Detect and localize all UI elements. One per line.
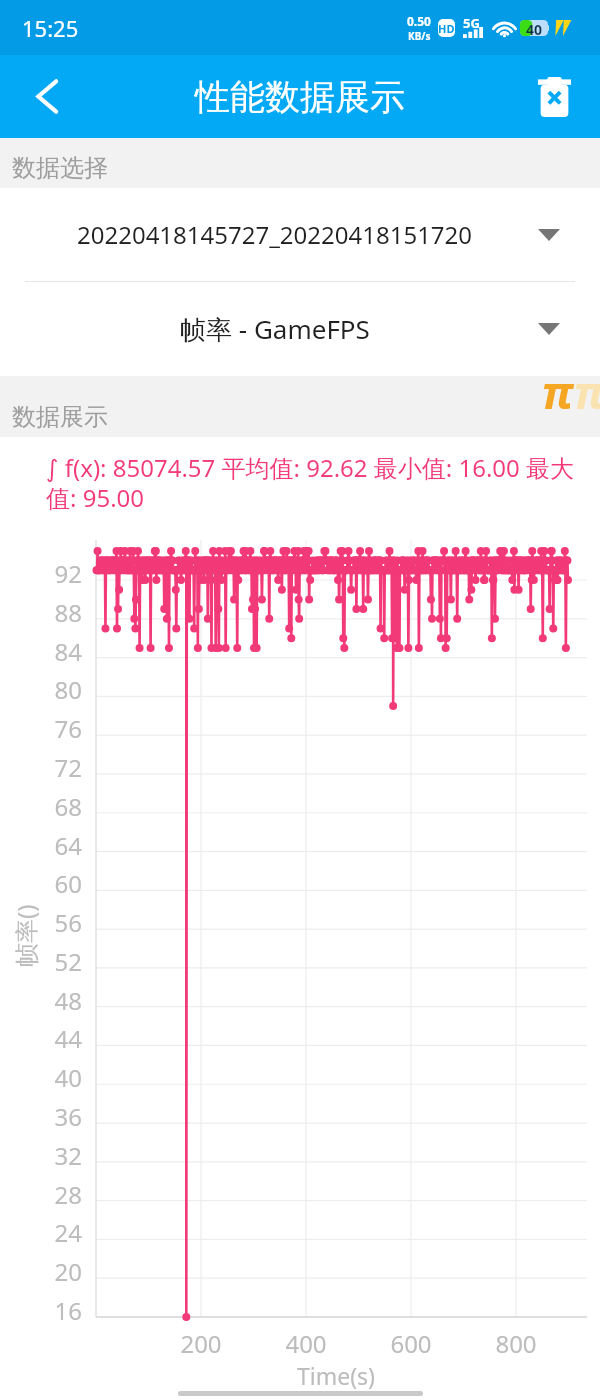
staticText: HD: [438, 21, 455, 36]
staticText: π: [574, 362, 600, 422]
staticText: 性能数据展示: [195, 75, 405, 119]
staticText: 92: [39, 557, 82, 590]
staticText: 84: [39, 635, 82, 668]
staticText: 40: [39, 1061, 82, 1094]
staticText: 72: [39, 751, 82, 784]
staticText: 200: [161, 1327, 241, 1360]
button[interactable]: Back: [0, 55, 74, 138]
staticText: 数据展示: [12, 402, 108, 432]
staticText: 600: [371, 1327, 451, 1360]
staticText: 0.50: [407, 13, 431, 29]
staticText: 40: [526, 20, 543, 36]
staticText: 36: [39, 1100, 82, 1133]
button[interactable]: 帧率 - GameFPS: [0, 282, 600, 376]
button[interactable]: 20220418145727_20220418151720: [0, 188, 600, 281]
staticText: 800: [476, 1327, 556, 1360]
staticText: 76: [39, 712, 82, 745]
staticText: 56: [39, 906, 82, 939]
staticText: 52: [39, 945, 82, 978]
staticText: 68: [39, 790, 82, 823]
staticText: 数据选择: [12, 153, 108, 183]
staticText: 64: [39, 829, 82, 862]
staticText: KB/s: [408, 29, 431, 43]
staticText: 88: [39, 596, 82, 629]
staticText: 帧率 - GameFPS: [180, 311, 370, 347]
button[interactable]: Delete: [526, 55, 600, 138]
staticText: 48: [39, 984, 82, 1017]
staticText: 20220418145727_20220418151720: [77, 218, 473, 251]
staticText: 帧率(): [9, 904, 41, 967]
staticText: 5G: [463, 14, 480, 32]
staticText: 60: [39, 867, 82, 900]
staticText: 44: [39, 1022, 82, 1055]
staticText: Time(s): [297, 1360, 376, 1391]
staticText: 80: [39, 673, 82, 706]
staticText: 400: [266, 1327, 346, 1360]
staticText: ∫ f(x): 85074.57 平均值: 92.62 最小值: 16.00 最…: [46, 451, 596, 514]
staticText: 28: [39, 1178, 82, 1211]
staticText: 16: [39, 1294, 82, 1327]
staticText: 32: [39, 1139, 82, 1172]
staticText: 24: [39, 1216, 82, 1249]
staticText: π: [542, 362, 574, 422]
staticText: 20: [39, 1255, 82, 1288]
staticText: 15:25: [22, 13, 79, 43]
